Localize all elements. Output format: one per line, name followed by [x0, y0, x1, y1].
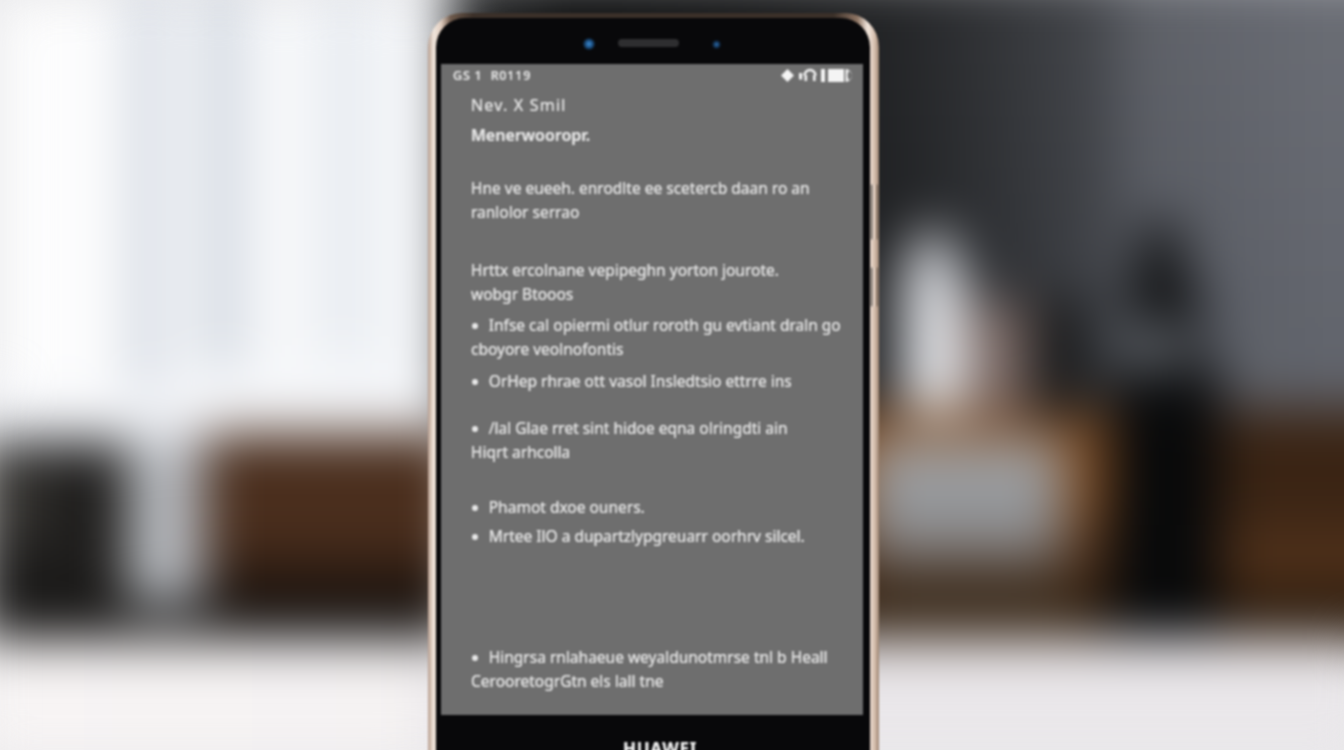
- button[interactable]: OrHep rhrae ott vasol Insledtsio ettrre …: [471, 370, 849, 391]
- button[interactable]: Status bar: [441, 64, 863, 86]
- button[interactable]: Hrttx ercolnane vepipeghn yorton jourote…: [471, 259, 849, 304]
- button[interactable]: Menerwooropr.: [471, 124, 849, 146]
- button[interactable]: Infse cal opiermi otlur roroth gu evtian…: [471, 314, 849, 359]
- staticText: HUAWEI: [623, 737, 698, 750]
- button[interactable]: Mrtee IlO a dupartzlypgreuarr oorhrv sil…: [471, 525, 849, 546]
- button[interactable]: Power: [871, 267, 878, 307]
- staticText: Mrtee IlO a dupartzlypgreuarr oorhrv sil…: [471, 525, 805, 546]
- staticText: Infse cal opiermi otlur roroth gu evtian…: [471, 314, 841, 359]
- button[interactable]: Hne ve eueeh. enrodlte ee scetercb daan …: [471, 177, 849, 222]
- staticText: /lal Glae rret sint hidoe eqna olringdti…: [471, 417, 788, 462]
- staticText: Phamot dxoe ouners.: [471, 496, 645, 517]
- button[interactable]: Volume: [871, 184, 878, 240]
- staticText: Hingrsa rnlahaeue weyaldunotmrse tnl b H…: [471, 646, 828, 691]
- button[interactable]: Phamot dxoe ouners.: [471, 496, 849, 517]
- button[interactable]: Hingrsa rnlahaeue weyaldunotmrse tnl b H…: [471, 646, 849, 691]
- button[interactable]: Nev. X Smil: [471, 94, 849, 116]
- button[interactable]: /lal Glae rret sint hidoe eqna olringdti…: [471, 417, 849, 462]
- staticText: OrHep rhrae ott vasol Insledtsio ettrre …: [471, 370, 792, 391]
- staticText: GS 1 R0119: [453, 67, 532, 84]
